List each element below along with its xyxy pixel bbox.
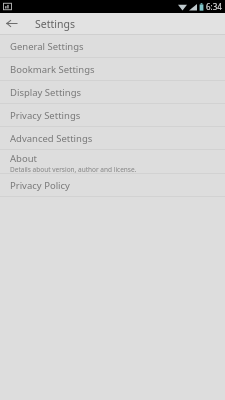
button[interactable]: Display Settings: [0, 81, 225, 103]
button[interactable]: General Settings: [0, 35, 225, 57]
button[interactable]: Advanced Settings: [0, 127, 225, 149]
button[interactable]: Privacy Policy: [0, 174, 225, 196]
staticText: Bookmark Settings: [10, 63, 95, 76]
button[interactable]: Back: [0, 13, 22, 34]
staticText: 6:34: [206, 1, 222, 12]
staticText: Privacy Policy: [10, 179, 70, 192]
staticText: Settings: [35, 17, 75, 31]
staticText: Privacy Settings: [10, 109, 81, 122]
button[interactable]: About: [0, 150, 225, 173]
button[interactable]: Bookmark Settings: [0, 58, 225, 80]
staticText: About: [10, 152, 37, 165]
staticText: Details about version, author and licens…: [10, 165, 137, 173]
staticText: General Settings: [10, 40, 84, 53]
staticText: Advanced Settings: [10, 132, 93, 145]
button[interactable]: Privacy Settings: [0, 104, 225, 126]
staticText: Display Settings: [10, 86, 82, 99]
